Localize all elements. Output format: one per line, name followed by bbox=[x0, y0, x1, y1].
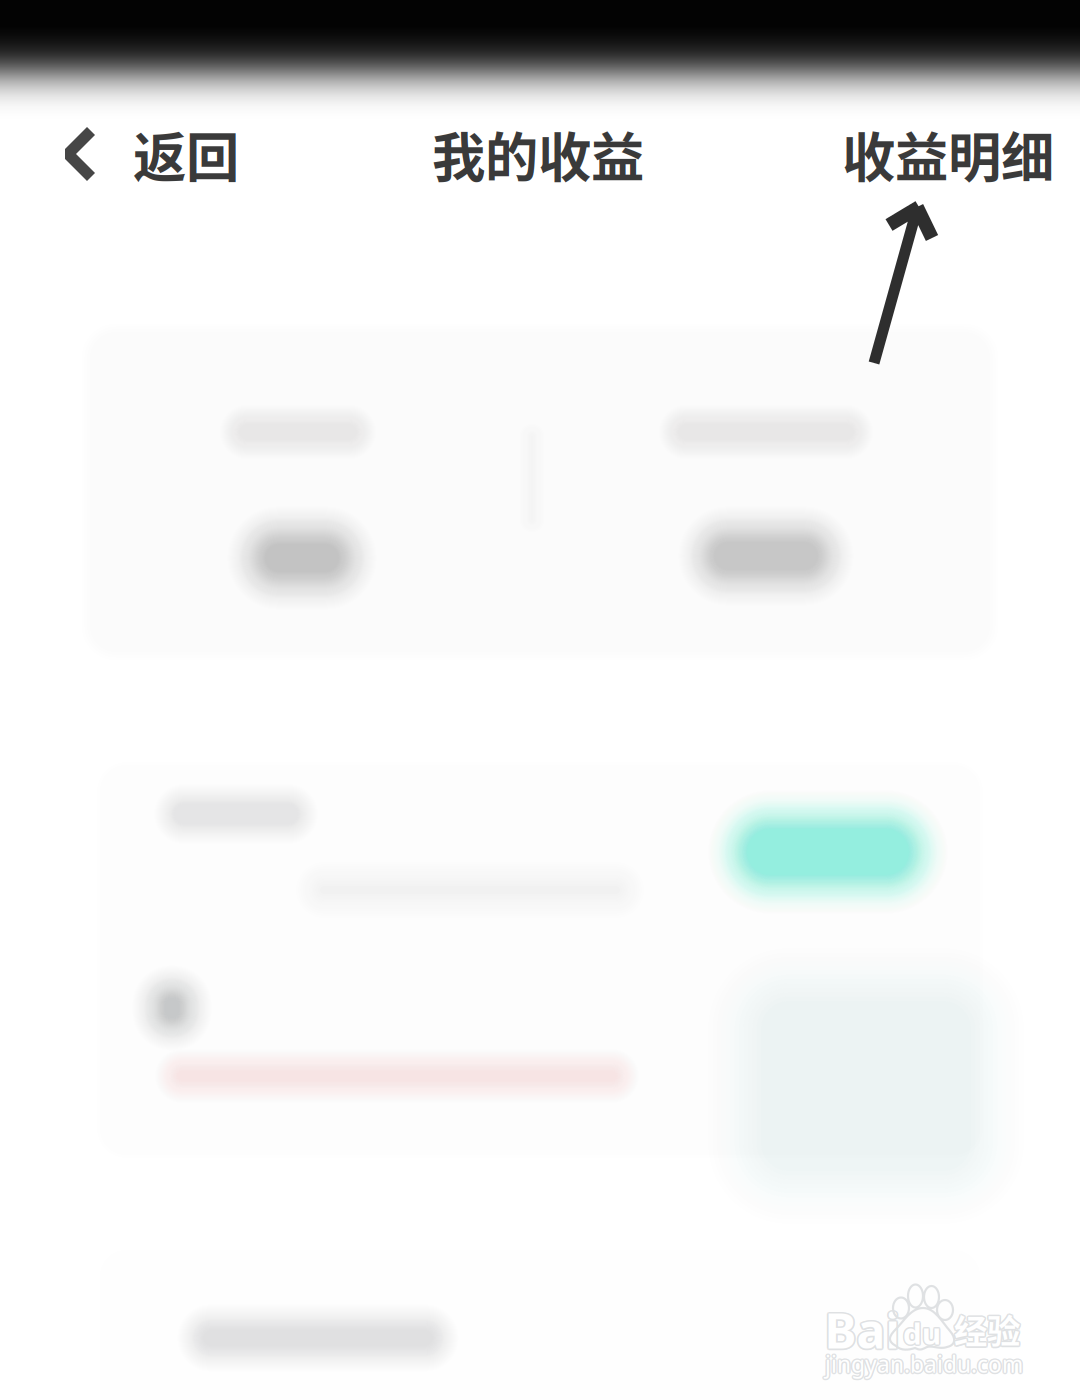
staticText: du bbox=[902, 1312, 940, 1352]
staticText: 经验 bbox=[953, 1304, 1019, 1352]
staticText: jingyan.baidu.com bbox=[825, 1347, 1023, 1378]
button[interactable]: 返回 bbox=[45, 93, 259, 215]
staticText: Bai bbox=[823, 1297, 898, 1363]
button[interactable]: 收益明细 bbox=[826, 93, 1070, 215]
staticText: jingyan.baidu.com bbox=[826, 1349, 1024, 1379]
staticText: du bbox=[903, 1311, 941, 1351]
staticText: jingyan.baidu.com bbox=[826, 1348, 1024, 1378]
staticText: 经验 bbox=[954, 1306, 1020, 1355]
staticText: jingyan.baidu.com bbox=[825, 1349, 1023, 1379]
staticText: Bai bbox=[823, 1296, 898, 1361]
staticText: Bai bbox=[826, 1298, 901, 1364]
staticText: 返回 bbox=[133, 115, 239, 193]
staticText: 经验 bbox=[953, 1306, 1019, 1354]
staticText: Bai bbox=[824, 1297, 899, 1363]
staticText: du bbox=[901, 1313, 939, 1353]
staticText: du bbox=[903, 1314, 941, 1354]
staticText: 经验 bbox=[954, 1305, 1020, 1353]
staticText: jingyan.baidu.com bbox=[824, 1348, 1022, 1378]
staticText: Bai bbox=[826, 1296, 901, 1361]
staticText: du bbox=[904, 1314, 942, 1354]
staticText: Bai bbox=[826, 1297, 901, 1363]
staticText: du bbox=[904, 1313, 942, 1353]
staticText: 经验 bbox=[954, 1303, 1020, 1352]
staticText: 经验 bbox=[956, 1305, 1022, 1353]
staticText: 经验 bbox=[955, 1304, 1021, 1352]
staticText: 经验 bbox=[952, 1305, 1018, 1353]
staticText: Bai bbox=[824, 1299, 899, 1364]
button[interactable]: 我的收益 bbox=[418, 93, 658, 215]
staticText: jingyan.baidu.com bbox=[824, 1349, 1022, 1379]
staticText: Bai bbox=[823, 1298, 898, 1364]
staticText: du bbox=[903, 1313, 941, 1353]
staticText: jingyan.baidu.com bbox=[826, 1350, 1024, 1380]
staticText: jingyan.baidu.com bbox=[825, 1350, 1023, 1381]
staticText: Bai bbox=[824, 1296, 899, 1361]
staticText: du bbox=[904, 1312, 942, 1352]
staticText: 收益明细 bbox=[842, 115, 1054, 193]
staticText: 经验 bbox=[955, 1306, 1021, 1354]
staticText: 我的收益 bbox=[432, 115, 644, 193]
staticText: jingyan.baidu.com bbox=[824, 1350, 1022, 1380]
staticText: du bbox=[902, 1314, 940, 1354]
